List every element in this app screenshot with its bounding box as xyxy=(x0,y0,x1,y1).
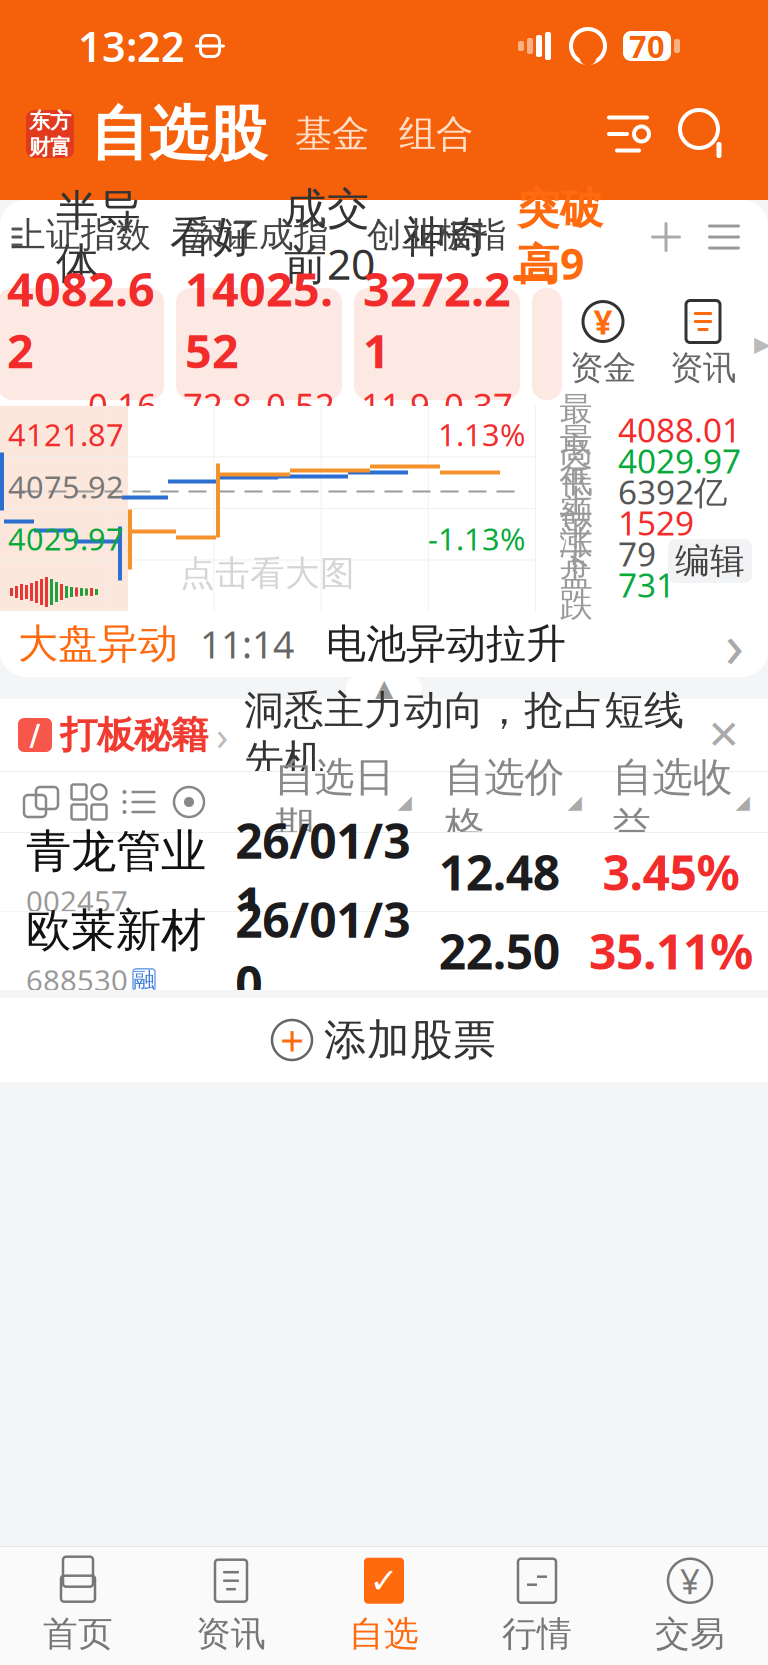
button[interactable]: ¥ xyxy=(570,299,636,388)
button[interactable]: 切换视图 xyxy=(18,779,64,825)
staticText: 72.81 xyxy=(183,382,252,474)
staticText: 4121.87 xyxy=(8,414,124,455)
staticText: 6392亿 xyxy=(618,469,727,514)
staticText: 行情 xyxy=(502,1613,572,1655)
staticText: 26/01/30 xyxy=(235,887,410,1015)
staticText: 1.13% xyxy=(438,414,525,455)
staticText: 下跌 xyxy=(559,544,592,625)
button[interactable]: 网格视图 xyxy=(64,779,114,825)
staticText: ▶ xyxy=(754,332,768,356)
button[interactable]: ✓ xyxy=(307,1547,460,1665)
staticText: 26/01/31 xyxy=(235,808,410,936)
staticText: 成交前20 xyxy=(284,182,375,292)
button[interactable]: 自选收益 xyxy=(598,774,764,830)
button[interactable]: 搜索 xyxy=(676,106,732,162)
staticText: ◢ xyxy=(397,791,411,813)
button[interactable]: 成交前20 xyxy=(284,182,375,292)
staticText: ✓ xyxy=(369,1561,398,1600)
staticText: ¥ xyxy=(680,1558,700,1604)
staticText: 最低 xyxy=(559,420,592,501)
button[interactable]: 神奇 xyxy=(403,211,489,263)
staticText: ◢ xyxy=(735,791,749,813)
button[interactable]: 编辑 xyxy=(668,539,752,583)
staticText: 4075.92 xyxy=(8,466,124,507)
staticText: 神奇 xyxy=(403,211,489,263)
staticText: 融 xyxy=(133,967,154,993)
button[interactable]: 设置列 xyxy=(164,779,214,825)
button[interactable]: 半导体 xyxy=(56,185,142,289)
button[interactable]: 欧莱新材 xyxy=(0,912,768,990)
staticText: 欧莱新材 xyxy=(26,903,206,958)
staticText: ◢ xyxy=(567,791,581,813)
staticText: 组合 xyxy=(399,111,473,157)
staticText: 看好 xyxy=(170,211,256,263)
staticText: 12.48 xyxy=(439,840,560,904)
button[interactable]: 创业板指 xyxy=(354,288,520,400)
button[interactable]: ¥ xyxy=(613,1547,766,1665)
button[interactable]: 看好 xyxy=(170,211,256,263)
staticText: 基金 xyxy=(295,111,369,157)
button[interactable]: 自选价格 xyxy=(428,774,598,830)
staticText: 22.50 xyxy=(439,919,560,983)
staticText: 自选价格 xyxy=(444,753,564,851)
button[interactable]: 添加分组 xyxy=(642,213,690,261)
button[interactable]: 列表视图 xyxy=(114,779,164,825)
button[interactable]: 突破高9 xyxy=(517,182,603,292)
button[interactable]: 青龙管业 xyxy=(0,833,768,911)
staticText: 资讯 xyxy=(670,347,736,388)
button[interactable]: 分组列表 xyxy=(0,212,34,262)
staticText: 11:14 xyxy=(200,619,294,669)
button[interactable]: 资讯 xyxy=(154,1547,307,1665)
staticText: 交易 xyxy=(655,1613,725,1655)
staticText: 0.37% xyxy=(444,382,513,474)
staticText: 自选收益 xyxy=(612,753,732,851)
staticText: 平盘 xyxy=(559,513,592,594)
staticText: 0.52% xyxy=(266,382,335,474)
staticText: 35.11% xyxy=(589,919,753,983)
staticText: ¥ xyxy=(593,299,612,344)
staticText: 资金 xyxy=(570,347,636,388)
staticText: 1529 xyxy=(618,500,694,545)
button[interactable]: 基金 xyxy=(285,101,379,167)
button[interactable]: 行情 xyxy=(460,1547,613,1665)
staticText: 自选日期 xyxy=(274,753,394,851)
button[interactable]: 自选日期 xyxy=(258,774,428,830)
staticText: 13:22 xyxy=(78,19,185,73)
staticText: 731 xyxy=(618,562,675,607)
button[interactable]: 组合 xyxy=(389,101,483,167)
staticText: 6.70 xyxy=(5,405,74,451)
staticText: 002457 xyxy=(26,881,128,920)
staticText: 首页 xyxy=(43,1613,113,1655)
staticText: 3.45% xyxy=(602,840,739,904)
staticText: -1.13% xyxy=(428,518,525,559)
staticText: 4029.97 xyxy=(8,518,124,559)
staticText: + xyxy=(280,1012,304,1068)
staticText: 东方 xyxy=(29,108,71,134)
staticText: 点击看大图 xyxy=(180,552,355,595)
staticText: 打板秘籍 xyxy=(60,712,208,758)
staticText: ✕ xyxy=(707,712,741,758)
staticText: 3272.21 xyxy=(363,257,511,381)
staticText: 半导体 xyxy=(56,185,142,289)
button[interactable]: 资讯 xyxy=(670,299,736,388)
staticText: 79 xyxy=(618,531,656,576)
staticText: 编辑 xyxy=(675,540,745,582)
button[interactable]: 关闭 xyxy=(696,707,752,763)
staticText: 70 xyxy=(629,26,665,66)
button[interactable]: 首页 xyxy=(1,1547,154,1665)
button[interactable]: 深证成指 xyxy=(176,288,342,400)
staticText: 0.16% xyxy=(88,382,157,474)
button[interactable]: 上证指数 xyxy=(0,288,164,400)
staticText: › xyxy=(216,708,228,761)
button[interactable]: 大盘异动 xyxy=(0,611,768,677)
staticText: 创业板指 xyxy=(367,214,507,256)
button[interactable]: 设置 xyxy=(600,106,656,162)
staticText: 大盘异动 xyxy=(18,619,178,668)
staticText: 上涨 xyxy=(559,482,592,563)
staticText: 自选 xyxy=(349,1613,419,1655)
staticText: › xyxy=(725,603,744,685)
button[interactable]: + xyxy=(0,998,768,1082)
staticText: 洞悉主力动向，抢占短线先机 xyxy=(244,686,684,784)
staticText: 4029.97 xyxy=(618,438,741,483)
button[interactable]: 全部分组 xyxy=(700,213,748,261)
